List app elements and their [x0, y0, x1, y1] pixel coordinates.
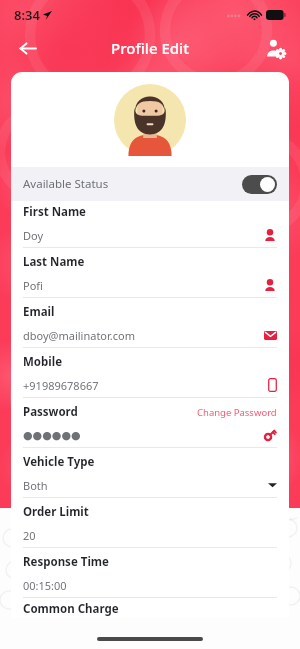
staticText: Order Limit — [23, 504, 89, 520]
button[interactable]: Response Time — [11, 551, 289, 601]
staticText: Last Name — [23, 254, 85, 270]
staticText: Available Status — [23, 176, 109, 192]
other: Person — [263, 278, 277, 292]
staticText: Vehicle Type — [23, 454, 95, 470]
staticText: First Name — [23, 204, 86, 220]
button[interactable]: Order Limit — [11, 501, 289, 551]
button[interactable]: Email — [11, 301, 289, 351]
button[interactable]: Available Status — [11, 167, 289, 201]
other: Mobile — [268, 378, 277, 392]
other: Person — [263, 228, 277, 242]
staticText: 20 — [23, 528, 36, 543]
other: Email — [264, 329, 277, 342]
staticText: Email — [23, 304, 55, 320]
button[interactable]: Account settings — [260, 33, 290, 63]
staticText: Both — [23, 478, 48, 493]
staticText: 00:15:00 — [23, 578, 67, 593]
button[interactable]: Change Password — [197, 406, 277, 419]
button[interactable]: Vehicle Type — [11, 451, 289, 501]
button[interactable]: Mobile — [11, 351, 289, 401]
button[interactable]: First Name — [11, 201, 289, 251]
staticText: Response Time — [23, 554, 109, 570]
other: Select vehicle type — [268, 482, 277, 488]
staticText: dboy@mailinator.com — [23, 328, 135, 343]
staticText: Profile Edit — [111, 38, 189, 58]
staticText: Common Charge — [23, 601, 119, 617]
button[interactable]: Last Name — [11, 251, 289, 301]
staticText: Mobile — [23, 354, 63, 370]
staticText: Password — [23, 404, 78, 420]
button[interactable]: Back — [12, 33, 42, 63]
staticText: Doy — [23, 228, 44, 243]
staticText: ●●●●●● — [23, 429, 81, 442]
staticText: Pofi — [23, 278, 43, 293]
other: Password — [263, 428, 277, 442]
staticText: +91989678667 — [23, 378, 99, 393]
button[interactable]: Password — [11, 401, 289, 451]
staticText: 8:34 — [14, 6, 40, 24]
